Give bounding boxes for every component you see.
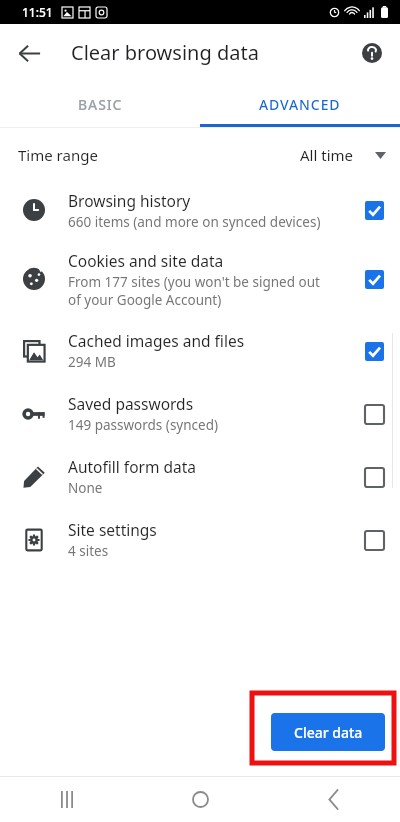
staticText: Cookies and site data [68, 250, 224, 271]
button[interactable]: Help [352, 33, 392, 73]
staticText: None [68, 479, 103, 497]
button[interactable]: Cached images and files [0, 319, 400, 382]
staticText: BASIC [78, 95, 123, 114]
staticText: Time range [18, 145, 98, 165]
button[interactable]: BASIC [0, 81, 200, 127]
button[interactable]: Not selected [356, 522, 392, 558]
button[interactable]: Recent apps [0, 776, 134, 822]
button[interactable]: Selected [356, 192, 392, 228]
button[interactable]: Autofill form data [0, 445, 400, 508]
button[interactable]: Not selected [356, 459, 392, 495]
staticText: 294 MB [68, 353, 116, 371]
button[interactable]: Selected [356, 261, 392, 297]
staticText: Site settings [68, 519, 157, 540]
button[interactable]: Back [8, 32, 50, 74]
staticText: Saved passwords [68, 393, 194, 414]
button[interactable]: Cookies and site data [0, 239, 400, 319]
button[interactable]: Site settings [0, 508, 400, 571]
staticText: Clear browsing data [71, 39, 259, 66]
staticText: From 177 sites (you won't be signed out … [68, 273, 320, 309]
staticText: Clear data [294, 723, 363, 742]
staticText: 660 items (and more on synced devices) [68, 213, 321, 231]
button[interactable]: Saved passwords [0, 382, 400, 445]
button[interactable]: Not selected [356, 396, 392, 432]
staticText: 149 passwords (synced) [68, 416, 219, 434]
staticText: ADVANCED [259, 95, 341, 114]
button[interactable]: Clear data [271, 713, 385, 751]
staticText: Browsing history [68, 190, 191, 211]
staticText: Cached images and files [68, 330, 245, 351]
staticText: All time [300, 145, 353, 165]
staticText: Autofill form data [68, 456, 196, 477]
staticText: 11:51 [22, 4, 53, 20]
staticText: 4 sites [68, 542, 109, 560]
button[interactable]: Time range [0, 128, 400, 181]
button[interactable]: Home [134, 776, 267, 822]
button[interactable]: Selected [356, 333, 392, 369]
button[interactable]: Back [267, 776, 400, 822]
button[interactable]: Browsing history [0, 181, 400, 239]
button[interactable]: ADVANCED [200, 81, 400, 127]
